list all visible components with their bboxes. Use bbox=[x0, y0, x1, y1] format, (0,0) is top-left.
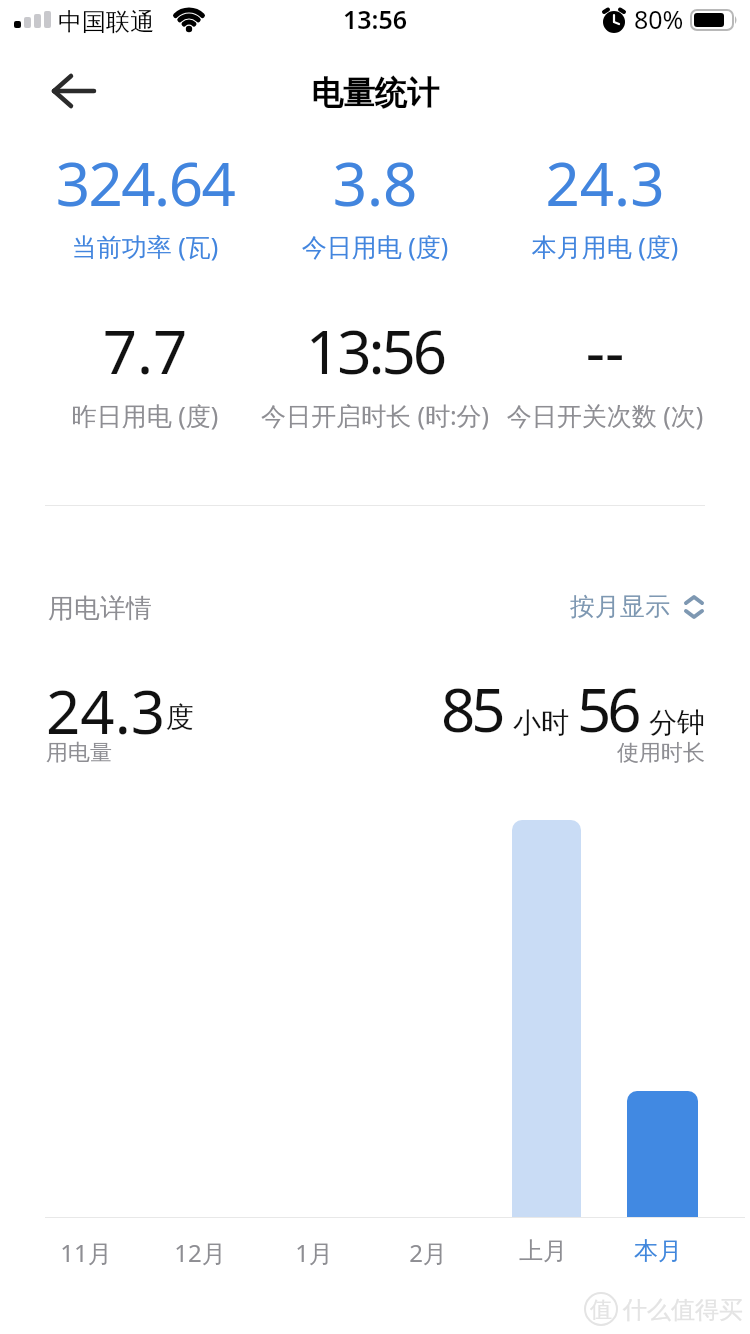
staticText: 今日用电 (度) bbox=[260, 229, 490, 263]
staticText: 80% bbox=[634, 2, 684, 36]
staticText: 12月 bbox=[150, 1236, 250, 1269]
staticText: 1月 bbox=[264, 1236, 364, 1269]
staticText: 今日开启时长 (时:分) bbox=[260, 398, 490, 432]
staticText: 24.3 bbox=[46, 670, 166, 752]
staticText: 按月显示 bbox=[570, 591, 670, 622]
button[interactable] bbox=[627, 1091, 698, 1218]
staticText: 本月用电 (度) bbox=[490, 229, 720, 263]
staticText: 什么值得买 bbox=[623, 1295, 743, 1325]
staticText: 3.8 bbox=[260, 142, 490, 224]
staticText: 度 bbox=[166, 700, 194, 735]
staticText: 56 bbox=[577, 668, 638, 750]
staticText: 用电量 bbox=[46, 739, 112, 767]
button[interactable] bbox=[35, 52, 113, 130]
staticText: -- bbox=[490, 310, 720, 392]
staticText: 85 bbox=[441, 668, 502, 750]
staticText: 使用时长 bbox=[505, 739, 705, 767]
button[interactable]: 按月显示 bbox=[480, 580, 706, 632]
staticText: 当前功率 (瓦) bbox=[30, 229, 260, 263]
staticText: 昨日用电 (度) bbox=[30, 398, 260, 432]
staticText: 分钟 bbox=[649, 705, 705, 740]
staticText: 13:56 bbox=[325, 2, 425, 36]
staticText: 今日开关次数 (次) bbox=[490, 398, 720, 432]
staticText: 2月 bbox=[378, 1236, 478, 1269]
staticText: 电量统计 bbox=[275, 73, 475, 113]
staticText: 上月 bbox=[493, 1236, 593, 1266]
staticText: 本月 bbox=[608, 1236, 708, 1266]
staticText: 7.7 bbox=[30, 310, 260, 392]
staticText: 小时 bbox=[513, 705, 569, 740]
staticText: 11月 bbox=[36, 1236, 136, 1269]
staticText: 用电详情 bbox=[48, 592, 152, 625]
staticText: 24.3 bbox=[490, 142, 720, 224]
staticText: 13:56 bbox=[260, 310, 490, 392]
staticText: 值 bbox=[584, 1296, 618, 1324]
staticText: 中国联通 bbox=[58, 7, 154, 37]
staticText: 324.64 bbox=[30, 142, 260, 224]
